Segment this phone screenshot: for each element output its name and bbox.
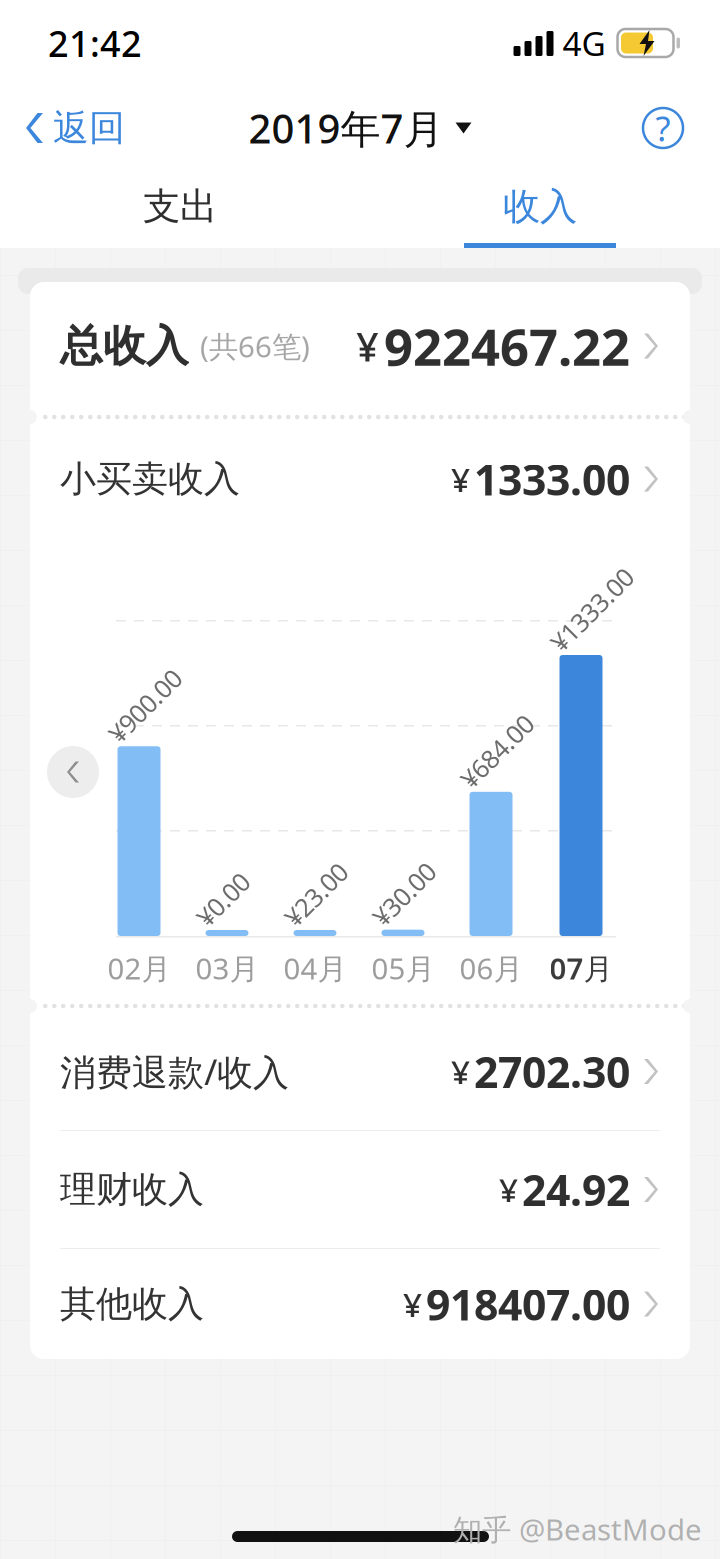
staticText: 小买卖收入	[60, 457, 240, 501]
button[interactable]: 其他收入	[30, 1249, 690, 1359]
staticText: 其他收入	[60, 1282, 204, 1326]
staticText: (共66笔)	[200, 326, 310, 365]
staticText: ¥30.00	[354, 856, 431, 890]
staticText: ¥	[356, 319, 379, 372]
staticText: ¥1333.00	[532, 581, 637, 615]
button[interactable]: 总收入	[30, 282, 690, 410]
staticText: 4G	[562, 21, 605, 65]
staticText: 04月	[283, 948, 346, 987]
staticText: 06月	[459, 948, 522, 987]
button[interactable]: 2019年7月	[238, 91, 481, 164]
staticText: 1333.00	[474, 451, 630, 507]
button[interactable]: 收入	[360, 170, 720, 248]
staticText: ¥23.00	[266, 856, 343, 890]
button[interactable]: 消费退款/收入	[30, 1013, 690, 1130]
button[interactable]: Help	[628, 93, 698, 163]
staticText: 24.92	[522, 1161, 630, 1218]
staticText: ¥0.00	[178, 856, 241, 890]
staticText: 03月	[195, 948, 258, 987]
staticText: ¥684.00	[442, 718, 533, 752]
staticText: 消费退款/收入	[60, 1048, 289, 1095]
staticText: 理财收入	[60, 1167, 204, 1212]
button[interactable]: 小买卖收入	[30, 424, 690, 534]
staticText: 返回	[53, 106, 125, 150]
staticText: ¥900.00	[90, 673, 181, 706]
staticText: 21:42	[48, 19, 142, 67]
button[interactable]: 支出	[0, 170, 360, 248]
staticText: 支出	[143, 184, 217, 229]
staticText: ¥	[451, 1049, 470, 1094]
button[interactable]: Previous months	[47, 746, 99, 798]
staticText: 02月	[107, 948, 170, 987]
button[interactable]: 理财收入	[30, 1131, 690, 1248]
staticText: ¥	[403, 1282, 422, 1326]
staticText: 收入	[503, 184, 577, 229]
staticText: ¥	[499, 1167, 518, 1212]
staticText: 总收入	[60, 320, 189, 372]
staticText: 07月	[549, 948, 612, 987]
staticText: 2702.30	[474, 1043, 630, 1100]
staticText: ¥	[451, 457, 470, 501]
staticText: 05月	[371, 948, 434, 987]
staticText: ?	[655, 105, 670, 151]
staticText: 922467.22	[384, 312, 630, 380]
staticText: 2019年7月	[248, 101, 443, 154]
staticText: 918407.00	[426, 1276, 630, 1332]
button[interactable]: 返回	[0, 88, 141, 168]
staticText: 知乎 @BeastMode	[453, 1509, 702, 1548]
